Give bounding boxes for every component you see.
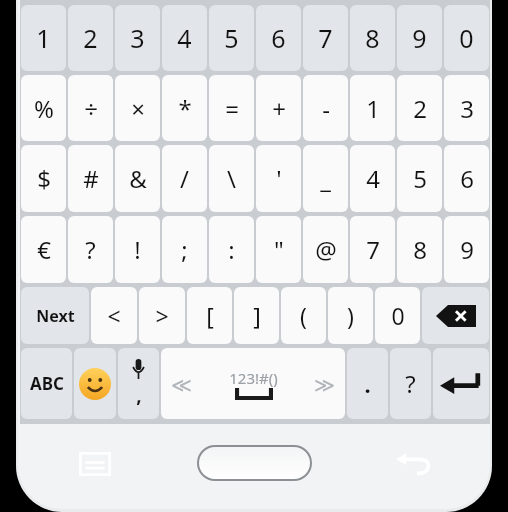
button[interactable]: !: [115, 216, 160, 283]
staticText: 4: [366, 162, 380, 195]
button[interactable]: [422, 287, 489, 344]
button[interactable]: ABC: [21, 348, 72, 419]
button[interactable]: 3: [444, 75, 489, 141]
button[interactable]: 6: [444, 145, 489, 212]
button[interactable]: €: [21, 216, 66, 283]
button[interactable]: ;: [162, 216, 207, 283]
staticText: 0: [459, 21, 474, 55]
staticText: 123!#(): [229, 368, 278, 388]
button[interactable]: 0: [375, 287, 420, 344]
button[interactable]: ÷: [68, 75, 113, 141]
staticText: 0: [391, 300, 405, 331]
button[interactable]: 7: [303, 5, 348, 71]
staticText: ,: [136, 382, 142, 408]
button[interactable]: 1: [21, 5, 66, 71]
staticText: 4: [177, 21, 192, 55]
staticText: -: [322, 92, 330, 125]
button[interactable]: <: [91, 287, 137, 344]
staticText: ]: [253, 300, 261, 331]
staticText: ?: [405, 367, 416, 400]
staticText: €: [37, 233, 51, 266]
button[interactable]: Next: [21, 287, 89, 344]
button[interactable]: &: [115, 145, 160, 212]
staticText: 9: [412, 21, 427, 55]
button[interactable]: ": [256, 216, 301, 283]
button[interactable]: 9: [444, 216, 489, 283]
staticText: ;: [181, 233, 188, 266]
staticText: +: [272, 92, 286, 125]
button[interactable]: 5: [209, 5, 254, 71]
staticText: #: [83, 162, 99, 195]
button[interactable]: $: [21, 145, 66, 212]
button[interactable]: ×: [115, 75, 160, 141]
staticText: ': [276, 162, 282, 195]
button[interactable]: ): [328, 287, 373, 344]
button[interactable]: 1: [350, 75, 395, 141]
button[interactable]: 4: [162, 5, 207, 71]
staticText: [: [206, 300, 214, 331]
button[interactable]: 5: [397, 145, 442, 212]
staticText: Next: [36, 305, 75, 327]
staticText: ≫: [314, 373, 335, 396]
staticText: 3: [460, 92, 474, 125]
button[interactable]: @: [303, 216, 348, 283]
button[interactable]: ,: [118, 348, 159, 419]
button[interactable]: ?: [390, 348, 431, 419]
button[interactable]: ?: [68, 216, 113, 283]
staticText: !: [134, 233, 141, 266]
button[interactable]: \: [209, 145, 254, 212]
button[interactable]: Home: [199, 447, 310, 479]
button[interactable]: [: [187, 287, 232, 344]
button[interactable]: 6: [256, 5, 301, 71]
staticText: 2: [413, 92, 427, 125]
button[interactable]: Back: [348, 424, 478, 512]
button[interactable]: -: [303, 75, 348, 141]
staticText: 7: [318, 21, 333, 55]
staticText: /: [180, 162, 189, 195]
staticText: 2: [83, 21, 98, 55]
staticText: 6: [271, 21, 286, 55]
staticText: 5: [224, 21, 239, 55]
staticText: 9: [460, 233, 474, 266]
button[interactable]: .: [347, 348, 388, 419]
button[interactable]: 2: [397, 75, 442, 141]
button[interactable]: 9: [397, 5, 442, 71]
button[interactable]: 3: [115, 5, 160, 71]
button[interactable]: :: [209, 216, 254, 283]
button[interactable]: 0: [444, 5, 489, 71]
button[interactable]: >: [139, 287, 185, 344]
button[interactable]: ': [256, 145, 301, 212]
button[interactable]: ≪: [161, 348, 345, 419]
button[interactable]: _: [303, 145, 348, 212]
button[interactable]: *: [162, 75, 207, 141]
button[interactable]: Menu: [30, 424, 160, 512]
staticText: <: [107, 300, 121, 331]
staticText: 1: [366, 92, 380, 125]
button[interactable]: 8: [350, 5, 395, 71]
button[interactable]: 2: [68, 5, 113, 71]
staticText: (: [300, 300, 307, 331]
staticText: ): [347, 300, 354, 331]
staticText: 8: [413, 233, 427, 266]
button[interactable]: #: [68, 145, 113, 212]
button[interactable]: =: [209, 75, 254, 141]
staticText: :: [228, 233, 235, 266]
staticText: $: [37, 162, 51, 195]
staticText: 7: [366, 233, 380, 266]
button[interactable]: /: [162, 145, 207, 212]
button[interactable]: %: [21, 75, 66, 141]
button[interactable]: (: [281, 287, 326, 344]
staticText: 3: [130, 21, 145, 55]
staticText: 1: [36, 21, 51, 55]
staticText: &: [129, 162, 147, 195]
staticText: ÷: [84, 92, 98, 125]
staticText: \: [227, 162, 236, 195]
button[interactable]: [433, 348, 489, 419]
button[interactable]: 7: [350, 216, 395, 283]
button[interactable]: 4: [350, 145, 395, 212]
button[interactable]: +: [256, 75, 301, 141]
button[interactable]: 8: [397, 216, 442, 283]
button[interactable]: ]: [234, 287, 279, 344]
button[interactable]: [74, 348, 116, 419]
staticText: ×: [131, 92, 145, 125]
